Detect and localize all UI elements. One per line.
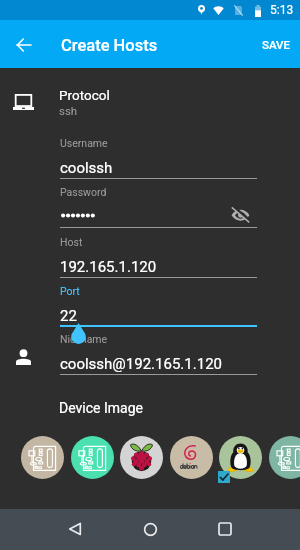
- button[interactable]: Back: [8, 29, 40, 61]
- button[interactable]: Port: [60, 284, 257, 334]
- staticText: SAVE: [262, 38, 291, 51]
- button[interactable]: SAVE: [252, 28, 300, 60]
- staticText: Nickname: [60, 333, 108, 345]
- staticText: coolssh: [60, 159, 113, 177]
- staticText: 5:13: [270, 3, 294, 17]
- staticText: Protocol: [59, 87, 110, 103]
- button[interactable]: Recents: [205, 509, 245, 549]
- staticText: 22: [60, 307, 77, 325]
- button[interactable]: Home: [130, 509, 170, 549]
- button[interactable]: Username: [60, 136, 257, 186]
- staticText: Port: [60, 285, 80, 297]
- staticText: 192.165.1.120: [60, 258, 157, 276]
- staticText: coolssh@192.165.1.120: [60, 355, 222, 373]
- button[interactable]: Toggle password visibility: [221, 195, 259, 235]
- staticText: Password: [60, 186, 107, 198]
- button[interactable]: Host: [60, 235, 257, 285]
- staticText: ssh: [59, 104, 78, 117]
- button[interactable]: Device image: [71, 436, 114, 479]
- button[interactable]: Device image: [21, 436, 64, 479]
- staticText: Device Image: [59, 400, 143, 416]
- button[interactable]: Selected: [218, 471, 230, 483]
- button[interactable]: Device image: [170, 436, 213, 479]
- button[interactable]: Device image: [219, 436, 262, 479]
- staticText: Host: [60, 236, 83, 248]
- button[interactable]: Device image: [269, 436, 300, 479]
- staticText: Create Hosts: [61, 36, 158, 55]
- button[interactable]: Back: [55, 509, 95, 549]
- button[interactable]: Nickname: [60, 332, 257, 382]
- button[interactable]: Password: [60, 185, 257, 235]
- staticText: Username: [60, 137, 108, 149]
- button[interactable]: Device image: [120, 436, 163, 479]
